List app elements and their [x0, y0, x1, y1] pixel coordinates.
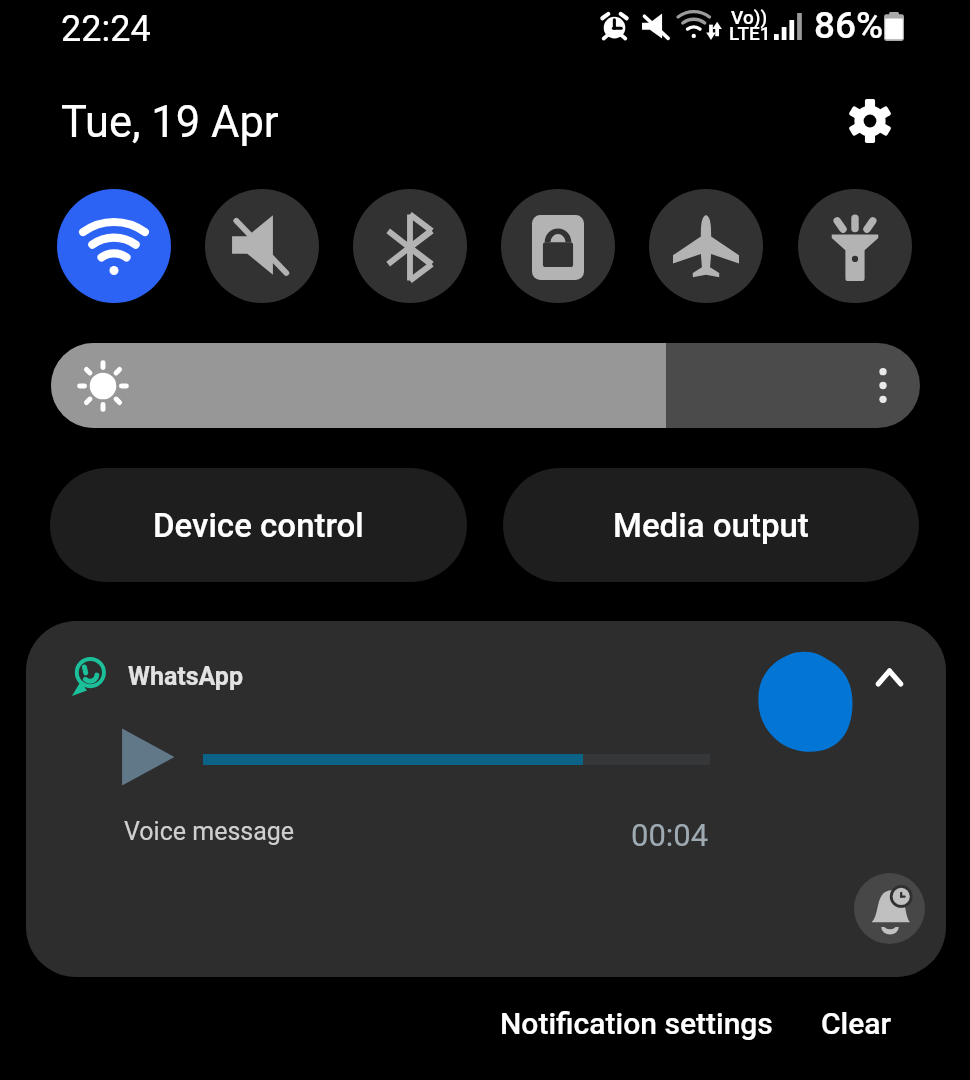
- staticText: Notification settings: [500, 1006, 773, 1041]
- button[interactable]: Play: [110, 719, 186, 795]
- button[interactable]: Sound off: [205, 189, 319, 303]
- staticText: Clear: [821, 1006, 892, 1041]
- button[interactable]: Settings: [845, 96, 895, 146]
- button[interactable]: Brightness: [51, 343, 920, 428]
- staticText: Device control: [153, 506, 364, 545]
- button[interactable]: Auto rotate: [501, 189, 615, 303]
- button[interactable]: Airplane mode: [649, 189, 763, 303]
- button[interactable]: WhatsApp voice message notification: [26, 621, 946, 977]
- button[interactable]: Wi-Fi: [57, 189, 171, 303]
- staticText: WhatsApp: [128, 662, 243, 691]
- staticText: Media output: [613, 506, 809, 545]
- staticText: Voice message: [124, 817, 295, 846]
- button[interactable]: Media output: [503, 468, 919, 582]
- button[interactable]: Device control: [50, 468, 467, 582]
- staticText: 22:24: [61, 8, 151, 50]
- button[interactable]: Bluetooth: [353, 189, 467, 303]
- staticText: Vo)): [731, 6, 768, 28]
- button[interactable]: Snooze: [854, 873, 925, 944]
- staticText: Tue, 19 Apr: [61, 97, 279, 148]
- staticText: 86%: [814, 4, 884, 47]
- button[interactable]: Collapse: [854, 642, 924, 712]
- staticText: 00:04: [631, 817, 709, 853]
- button[interactable]: Flashlight: [798, 189, 912, 303]
- button[interactable]: Notification settings: [491, 994, 781, 1050]
- button[interactable]: Clear: [801, 994, 911, 1050]
- staticText: LTE1: [729, 22, 771, 44]
